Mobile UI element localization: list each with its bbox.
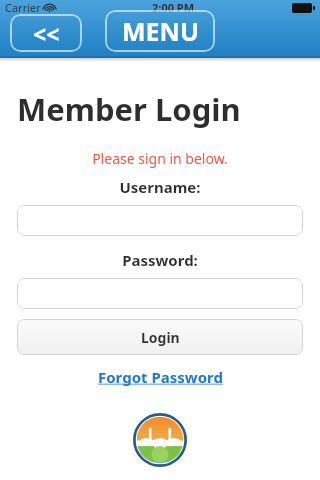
staticText: Login (141, 328, 180, 347)
staticText: Member Login (17, 88, 241, 130)
staticText: << (33, 18, 60, 49)
staticText: MENU (122, 14, 199, 48)
button[interactable]: Forgot Password (92, 365, 229, 389)
staticText: Forgot Password (98, 367, 223, 387)
staticText: Username: (0, 177, 320, 197)
staticText: Password: (0, 250, 320, 270)
button[interactable]: Text field (17, 278, 303, 309)
button[interactable]: MENU (105, 10, 215, 52)
staticText: Please sign in below. (0, 149, 320, 168)
staticText: Carrier (5, 0, 41, 15)
button[interactable]: Back (10, 14, 82, 52)
button[interactable]: Text field (17, 205, 303, 236)
button[interactable]: Login (17, 319, 303, 355)
staticText: 2:00 PM (152, 0, 195, 15)
